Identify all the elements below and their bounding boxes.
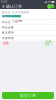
staticText: 配送至 北京市朝阳区 xyxy=(2,11,30,14)
button[interactable]: 优惠明细 xyxy=(0,36,56,41)
button[interactable]: 配送费用 xyxy=(0,30,56,35)
staticText: 提交订单 xyxy=(20,93,36,98)
staticText: 张先生 138**** xyxy=(2,20,22,24)
button[interactable]: 张先生 138**** xyxy=(0,19,56,24)
button[interactable]: Back xyxy=(1,4,6,9)
staticText: 商品金额 xyxy=(2,26,14,29)
staticText: › xyxy=(52,9,53,15)
button[interactable]: 商品金额 xyxy=(0,25,56,30)
button[interactable]: 去结算 xyxy=(47,5,54,8)
staticText: 优惠明细 xyxy=(2,36,14,40)
staticText: 立即送出 约30分钟 xyxy=(3,13,19,19)
staticText: 去结算 xyxy=(48,3,54,10)
staticText: 已减¥5 xyxy=(45,40,51,46)
button[interactable]: 优惠 xyxy=(3,41,9,45)
staticText: 优惠 xyxy=(3,41,9,45)
staticText: 9:41 xyxy=(1,0,8,4)
button[interactable]: 已减¥5 xyxy=(44,41,53,45)
staticText: › xyxy=(52,19,53,24)
staticText: 配送费用 xyxy=(2,31,14,34)
button[interactable]: 提交订单 xyxy=(2,92,54,99)
staticText: 确认订单 xyxy=(6,4,22,9)
